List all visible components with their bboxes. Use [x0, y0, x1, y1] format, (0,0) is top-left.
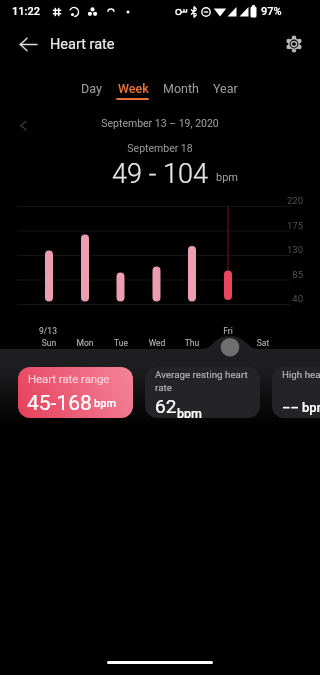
staticText: Thu — [178, 338, 206, 348]
staticText: 11:22 — [12, 5, 40, 18]
staticText: Fri — [214, 326, 242, 336]
staticText: Sat — [249, 338, 277, 348]
staticText: 220 — [270, 195, 303, 206]
staticText: Year — [213, 81, 238, 96]
staticText: Sun — [35, 338, 63, 348]
staticText: 9/13 — [34, 326, 62, 336]
staticText: 45-168 — [27, 391, 92, 416]
button[interactable]: Back — [10, 26, 46, 62]
staticText: Day — [81, 81, 102, 96]
staticText: 40 — [270, 293, 303, 304]
staticText: September 13 – 19, 2020 — [0, 117, 320, 129]
button[interactable]: Week — [108, 74, 158, 102]
staticText: bpm — [94, 397, 116, 410]
button[interactable]: Previous week — [10, 112, 36, 138]
button[interactable]: Average resting heart rate — [145, 367, 260, 418]
staticText: 97% — [261, 5, 282, 18]
staticText: Average resting heart rate — [155, 369, 248, 393]
staticText: bpm — [216, 171, 238, 184]
staticText: –– bpm — [282, 400, 320, 415]
staticText: 130 — [270, 244, 303, 255]
staticText: Wed — [143, 338, 171, 348]
staticText: bpm — [177, 406, 202, 418]
staticText: Mon — [71, 338, 99, 348]
staticText: 175 — [270, 220, 303, 231]
staticText: Tue — [107, 338, 135, 348]
staticText: September 18 — [0, 142, 320, 154]
staticText: Month — [163, 81, 199, 96]
staticText: 49 - 104 — [0, 158, 320, 190]
button[interactable]: High heart rate — [272, 367, 320, 418]
staticText: Heart rate — [50, 36, 115, 53]
staticText: Heart rate range — [28, 373, 110, 386]
staticText: 62 — [155, 395, 177, 417]
button[interactable]: Settings — [278, 28, 310, 60]
button[interactable]: Month — [156, 74, 206, 102]
staticText: High heart rate — [282, 369, 320, 380]
button[interactable]: Year — [200, 74, 250, 102]
button[interactable]: Heart rate range — [18, 367, 133, 418]
staticText: 85 — [270, 269, 303, 280]
button[interactable]: Day — [66, 74, 116, 102]
staticText: Week — [118, 81, 149, 96]
